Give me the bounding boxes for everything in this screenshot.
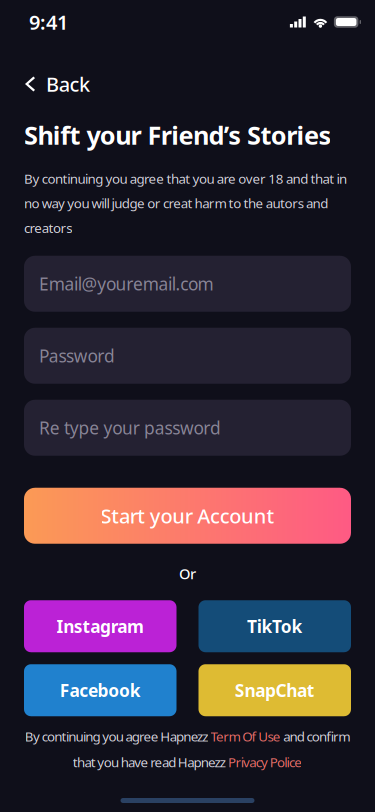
staticText: Term Of Use [211,728,281,745]
button[interactable]: Re type your password [24,400,351,456]
staticText: Start your Account [100,502,274,529]
button[interactable]: TikTok [198,600,351,652]
button[interactable]: Privacy Police [228,753,302,771]
button[interactable]: Start your Account [24,488,351,544]
staticText: that you have read Hapnezz [73,753,228,771]
button[interactable]: Back [0,63,114,105]
staticText: 9:41 [29,9,68,35]
button[interactable]: Term Of Use [211,728,281,745]
staticText: Back [46,71,90,97]
button[interactable]: Instagram [24,600,176,652]
staticText: SnapChat [235,679,315,702]
staticText: Re type your password [39,416,221,439]
staticText: Instagram [56,615,144,638]
staticText: Email@youremail.com [39,272,214,295]
staticText: Privacy Police [228,753,302,771]
staticText: Shift your Friend’s Stories [24,118,331,152]
staticText: By continuing you agree Hapnezz [25,728,211,745]
staticText: creators [24,219,72,237]
staticText: By continuing you agree that you are ove… [24,170,347,187]
staticText: and confirm [281,728,350,745]
button[interactable]: Email@youremail.com [24,256,351,312]
button[interactable]: Facebook [24,664,176,716]
staticText: Facebook [60,679,141,702]
button[interactable]: Password [24,328,351,384]
staticText: Password [39,344,115,367]
staticText: no way you will judge or creat harm to t… [24,194,328,212]
staticText: TikTok [247,615,302,638]
button[interactable]: SnapChat [198,664,351,716]
staticText: Or [179,564,196,583]
